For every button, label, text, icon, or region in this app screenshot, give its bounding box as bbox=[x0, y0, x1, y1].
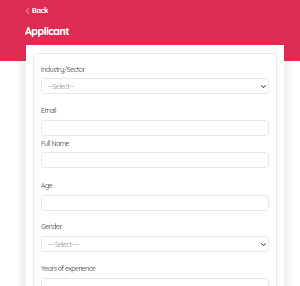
staticText: Years of experience bbox=[41, 264, 96, 273]
staticText: ---Select--- bbox=[48, 240, 79, 249]
button[interactable]: Email bbox=[41, 120, 269, 136]
staticText: --Select-- bbox=[48, 82, 74, 91]
button[interactable]: Full Name bbox=[41, 152, 269, 168]
staticText: Email bbox=[41, 106, 57, 115]
button[interactable]: Industry/Sector bbox=[41, 78, 269, 94]
staticText: Applicant bbox=[25, 24, 70, 37]
button[interactable]: Back bbox=[25, 5, 50, 16]
button[interactable]: Age bbox=[41, 195, 269, 211]
button[interactable]: Years of experience bbox=[41, 278, 269, 286]
staticText: Age bbox=[41, 181, 53, 190]
staticText: Gender bbox=[41, 222, 62, 231]
staticText: Industry/Sector bbox=[41, 65, 85, 74]
staticText: Full Name bbox=[41, 139, 70, 148]
button[interactable]: Gender bbox=[41, 236, 269, 252]
staticText: Back bbox=[32, 6, 49, 15]
